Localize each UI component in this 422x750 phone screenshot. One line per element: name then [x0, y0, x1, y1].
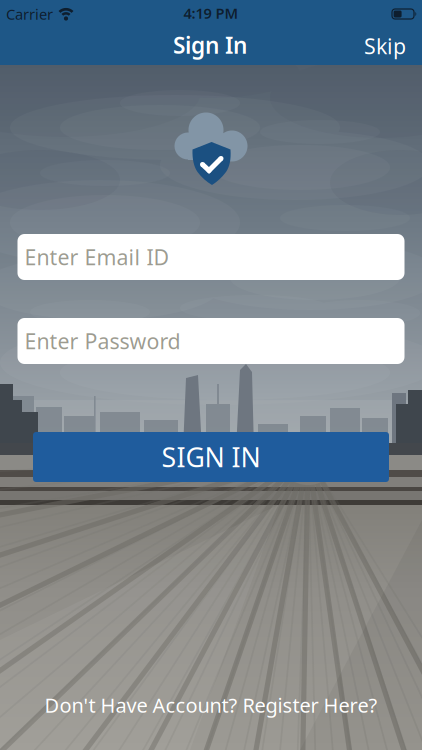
- staticText: Enter Password: [24, 327, 180, 355]
- button[interactable]: Skip: [364, 32, 406, 60]
- staticText: Sign In: [173, 30, 247, 60]
- button[interactable]: Don't Have Account? Register Here?: [44, 692, 377, 718]
- textField[interactable]: Enter Email ID: [24, 243, 404, 271]
- staticText: SIGN IN: [161, 439, 260, 475]
- textField[interactable]: Enter Password: [24, 327, 404, 355]
- staticText: Don't Have Account? Register Here?: [44, 692, 377, 718]
- staticText: Skip: [364, 32, 406, 60]
- staticText: Carrier: [6, 4, 53, 24]
- staticText: 4:19 PM: [183, 3, 238, 23]
- staticText: Enter Email ID: [24, 243, 169, 271]
- button[interactable]: SIGN IN: [33, 432, 389, 482]
